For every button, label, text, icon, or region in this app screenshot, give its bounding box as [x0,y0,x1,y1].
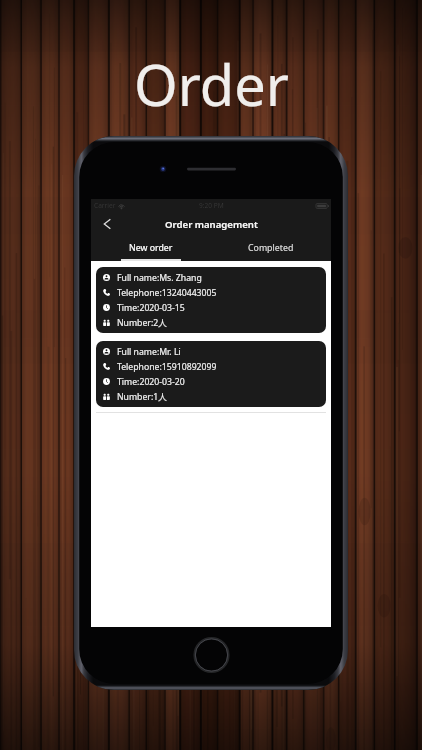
button[interactable]: Back [98,214,116,234]
staticText: Telephone:13240443005 [117,287,217,299]
button[interactable]: New order [91,236,211,261]
staticText: Number:1人 [117,391,167,403]
staticText: Time:2020-03-15 [117,302,185,314]
staticText: Order [134,46,289,112]
staticText: Number:2人 [117,317,167,329]
staticText: Telephone:15910892099 [117,361,217,373]
staticText: Carrier [94,201,116,210]
staticText: Completed [248,242,294,254]
staticText: Full name:Ms. Zhang [117,272,202,284]
staticText: 9:20 PM [199,201,224,210]
button[interactable]: Completed [211,236,331,261]
staticText: Order management [165,218,258,231]
button[interactable]: Full name:Ms. Zhang [96,267,326,333]
staticText: Full name:Mr. Li [117,346,181,358]
staticText: Time:2020-03-20 [117,376,185,388]
button[interactable]: Full name:Mr. Li [96,341,326,407]
staticText: New order [129,242,173,254]
